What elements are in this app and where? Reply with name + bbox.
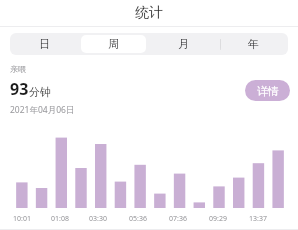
staticText: 统计 <box>135 4 163 22</box>
staticText: 分钟 <box>29 85 51 99</box>
staticText: 周 <box>108 37 119 51</box>
staticText: 10:01 <box>13 214 31 224</box>
staticText: 日 <box>39 37 50 51</box>
staticText: 03:30 <box>89 214 107 224</box>
button[interactable]: 月 <box>150 35 216 53</box>
staticText: 详情 <box>257 84 279 98</box>
button[interactable]: 年 <box>220 35 286 53</box>
button[interactable]: 周 <box>81 35 146 53</box>
staticText: 月 <box>178 37 189 51</box>
staticText: 01:08 <box>51 214 69 224</box>
staticText: 07:36 <box>169 214 187 224</box>
staticText: 09:29 <box>209 214 227 224</box>
staticText: 2021年04月06日 <box>10 104 75 116</box>
staticText: 05:36 <box>129 214 147 224</box>
staticText: 93 <box>10 78 29 100</box>
button[interactable]: 详情 <box>245 80 290 101</box>
staticText: 亲喂 <box>10 64 26 74</box>
button[interactable]: 日 <box>12 35 77 53</box>
staticText: 13:37 <box>249 214 267 224</box>
staticText: 年 <box>248 37 259 51</box>
